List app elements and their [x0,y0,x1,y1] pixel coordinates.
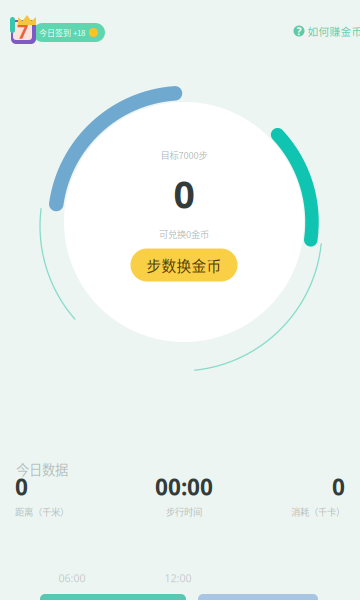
staticText: 00:00 [155,472,213,502]
staticText: 0 [332,472,345,502]
staticText: 步行时间 [166,505,202,518]
button[interactable]: 步数换金币 [130,248,237,281]
staticText: 消耗（千卡） [291,505,345,518]
staticText: 0 [15,472,28,502]
staticText: 目标7000步 [160,148,207,162]
staticText: 如何赚金币 [307,23,360,39]
staticText: 12:00 [164,571,191,585]
staticText: 7 [17,18,28,44]
staticText: 步数换金币 [146,254,221,276]
button[interactable]: 今日签到 +18 [0,0,120,50]
staticText: 距离（千米） [15,505,69,518]
staticText: 可兑换0金币 [159,227,209,241]
button[interactable]: ? [293,23,360,39]
staticText: 今日签到 +18 [39,27,85,38]
staticText: 0 [173,169,194,219]
staticText: ? [296,24,301,38]
staticText: 06:00 [58,571,85,585]
staticText: 今日数据 [16,459,68,479]
